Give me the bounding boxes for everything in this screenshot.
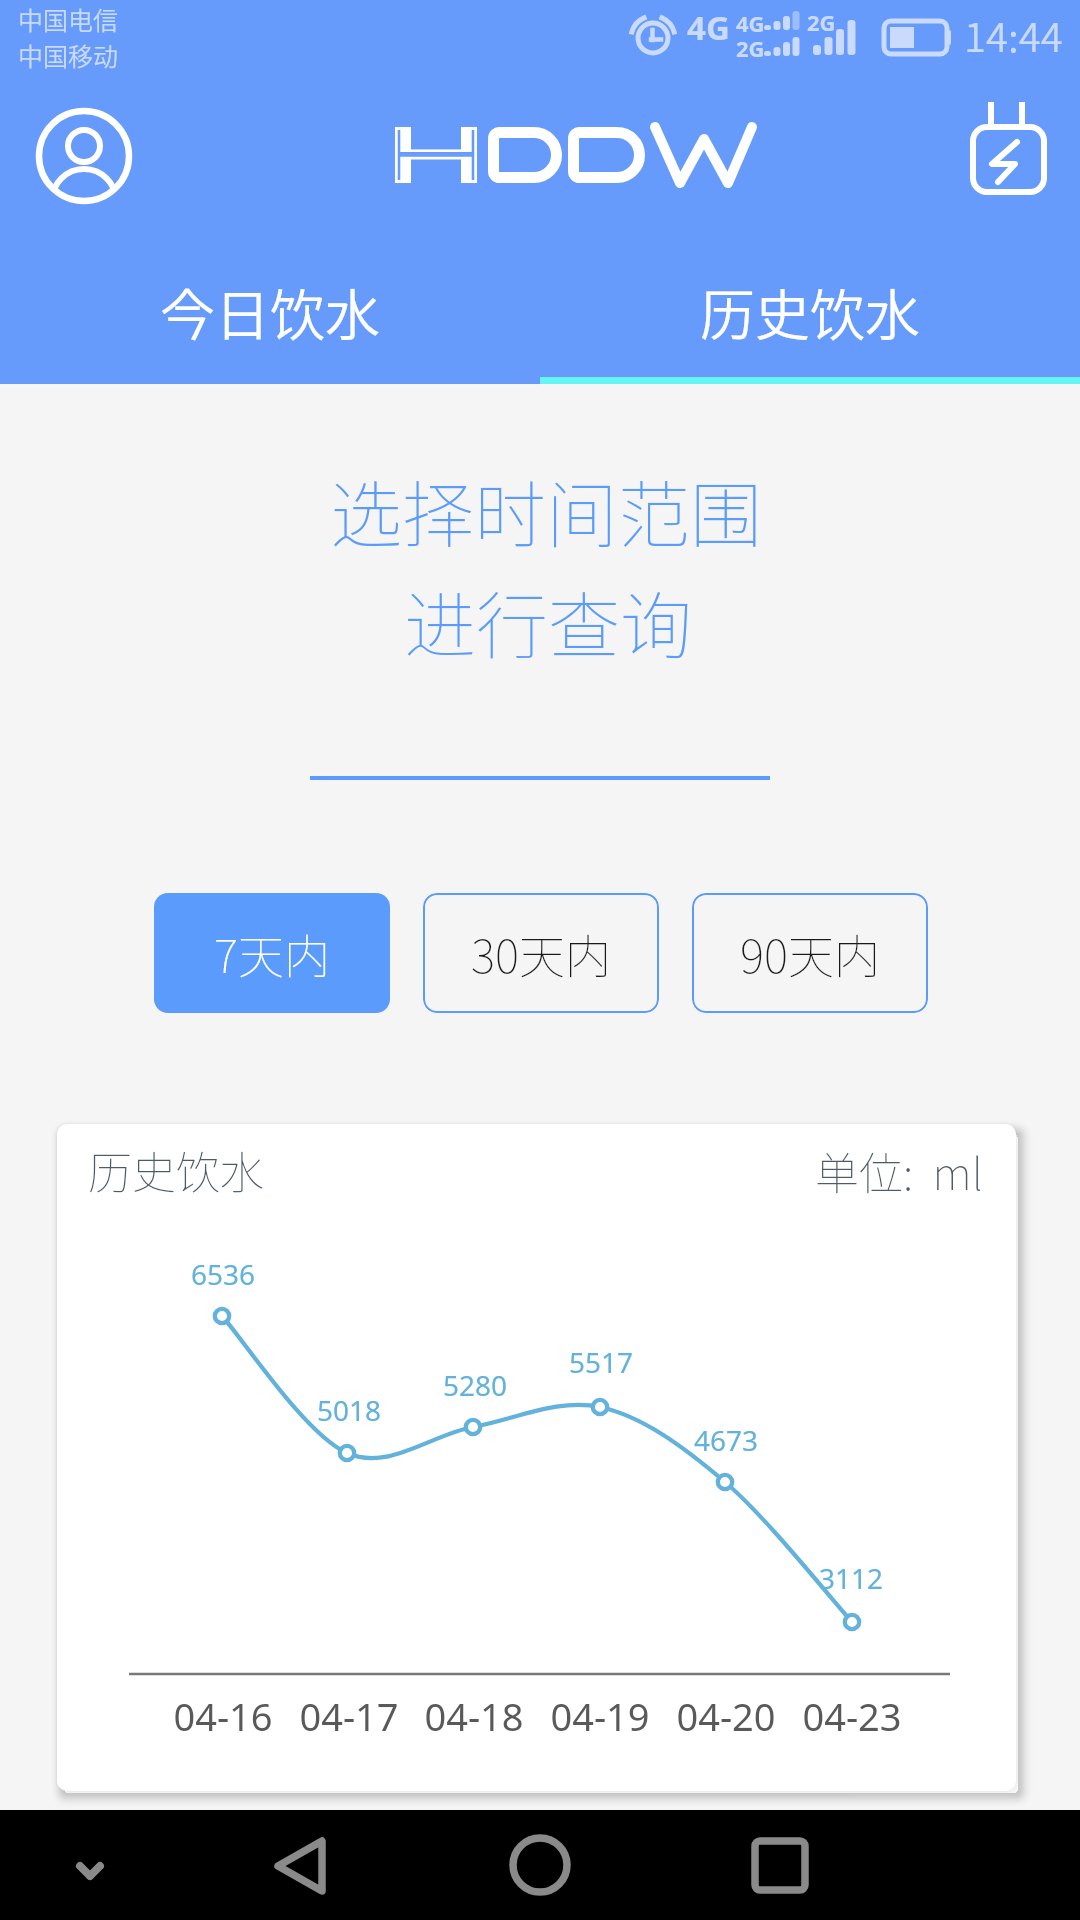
button[interactable]: Home — [490, 1810, 590, 1910]
staticText: 4G — [736, 8, 765, 38]
staticText: 今日饮水 — [160, 271, 381, 351]
staticText: 04-17 — [279, 1690, 419, 1742]
button[interactable]: Profile — [34, 100, 134, 200]
staticText: 7天内 — [214, 920, 330, 987]
staticText: 2G — [736, 33, 765, 63]
button[interactable]: 历史饮水 — [540, 222, 1080, 384]
staticText: 4G — [687, 5, 730, 50]
staticText: 3112 — [791, 1559, 911, 1597]
staticText: 14:44 — [964, 6, 1063, 64]
staticText: 4673 — [666, 1421, 786, 1459]
button[interactable]: Recent apps — [730, 1810, 830, 1910]
button[interactable]: 今日饮水 — [0, 222, 540, 384]
staticText: 04-18 — [404, 1690, 544, 1742]
staticText: 单位: ml — [815, 1139, 983, 1203]
button[interactable]: Back — [250, 1810, 350, 1910]
staticText: 30天内 — [471, 920, 611, 987]
staticText: 选择时间范围 — [6, 457, 1080, 561]
button[interactable]: Charging — [965, 102, 1055, 192]
button[interactable]: 30天内 — [423, 893, 659, 1013]
staticText: 中国电信 — [18, 1, 119, 37]
staticText: 历史饮水 — [700, 271, 921, 351]
staticText: 04-16 — [153, 1690, 293, 1742]
staticText: 历史饮水 — [88, 1138, 264, 1202]
staticText: 中国移动 — [18, 37, 119, 73]
staticText: 5018 — [289, 1391, 409, 1429]
staticText: 6536 — [163, 1255, 283, 1293]
staticText: 5517 — [541, 1343, 661, 1381]
staticText: 2G — [807, 7, 836, 37]
staticText: 04-19 — [530, 1690, 670, 1742]
button[interactable]: 7天内 — [154, 893, 390, 1013]
button[interactable]: 90天内 — [692, 893, 928, 1013]
staticText: 5280 — [415, 1366, 535, 1404]
button[interactable]: Hide keyboard — [40, 1816, 140, 1916]
staticText: 04-23 — [782, 1690, 922, 1742]
staticText: 90天内 — [740, 920, 880, 987]
staticText: 04-20 — [656, 1690, 796, 1742]
staticText: 进行查询 — [8, 568, 1080, 672]
